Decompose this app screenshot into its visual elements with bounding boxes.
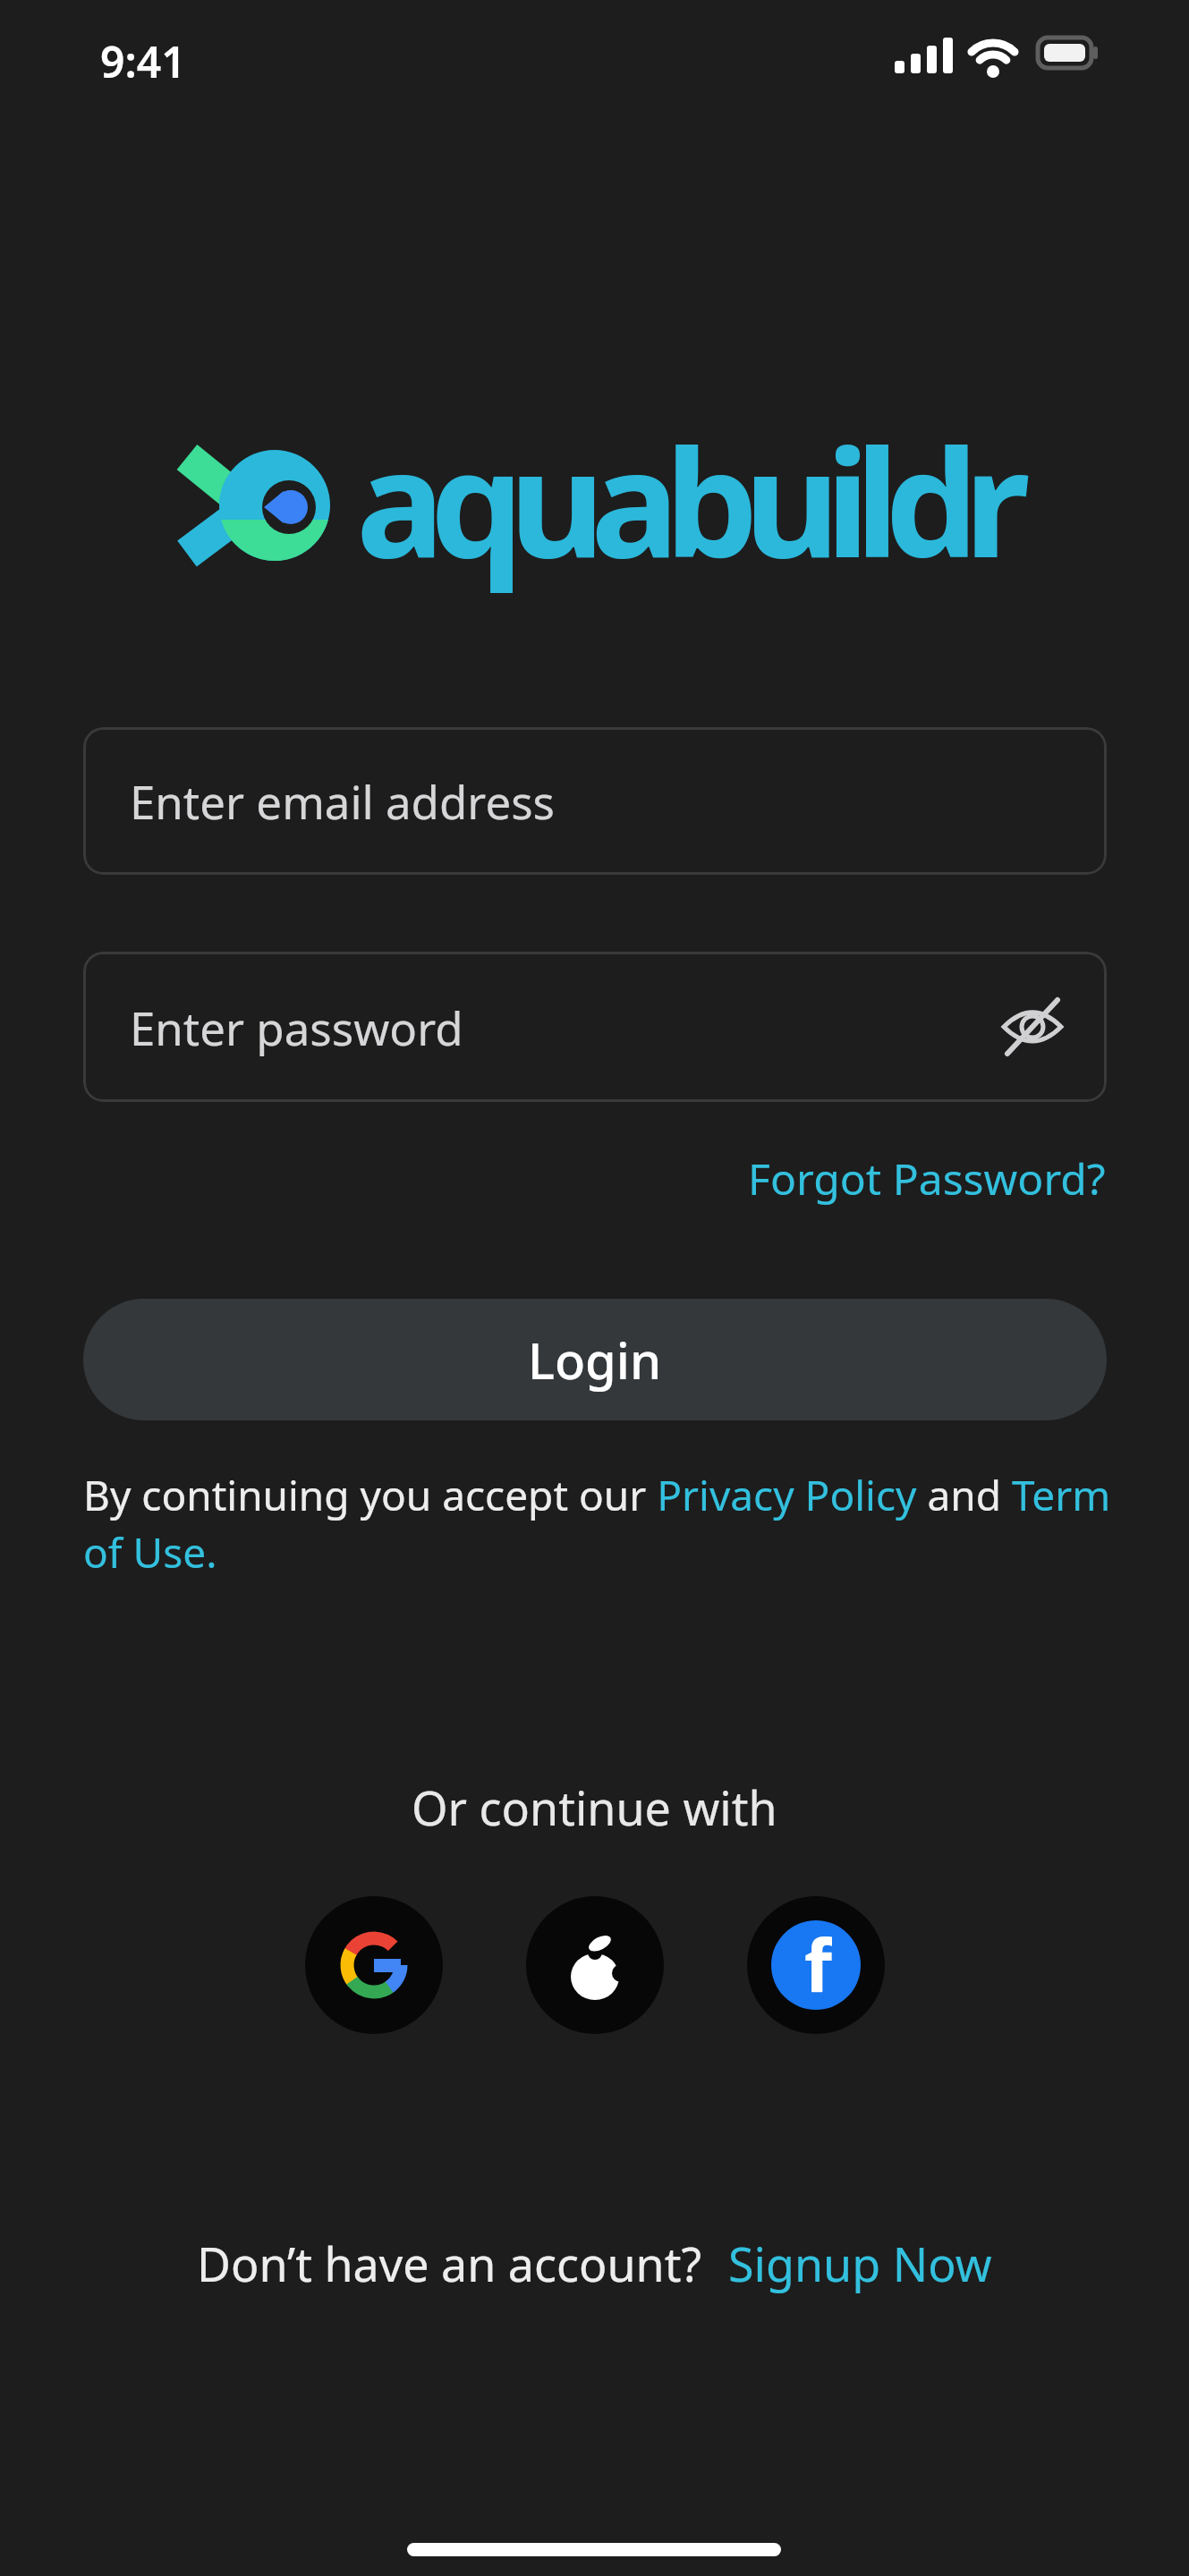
staticText: Don’t have an account? (197, 2232, 701, 2295)
staticText: Or continue with (412, 1775, 777, 1839)
staticText: Enter password (130, 996, 463, 1058)
button[interactable]: f (747, 1896, 885, 2034)
staticText: 9:41 (100, 32, 186, 90)
button[interactable]: Forgot Password? (748, 1149, 1106, 1207)
staticText: By continuing you accept our Privacy Pol… (83, 1467, 1121, 1580)
staticText: Login (528, 1326, 662, 1394)
button[interactable] (526, 1896, 664, 2034)
staticText: f (804, 1920, 832, 2004)
button[interactable] (305, 1896, 443, 2034)
button[interactable]: Enter password (83, 952, 1107, 1102)
staticText: aquabuildr (356, 400, 1016, 601)
staticText: Enter email address (130, 770, 556, 832)
button[interactable]: Signup Now (728, 2232, 992, 2295)
button[interactable]: Login (83, 1299, 1107, 1420)
button[interactable]: Enter email address (83, 727, 1107, 875)
